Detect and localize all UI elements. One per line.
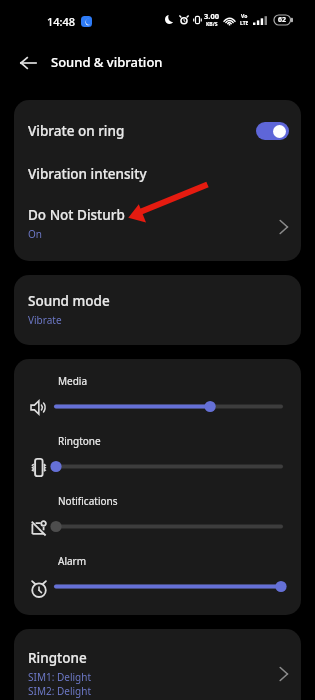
staticText: 3.00 xyxy=(204,11,219,21)
staticText: Vibration intensity xyxy=(28,165,147,183)
button[interactable]: Media xyxy=(14,371,301,427)
staticText: On xyxy=(28,227,42,241)
staticText: 62 xyxy=(278,15,287,25)
button[interactable]: Notifications xyxy=(14,491,301,547)
staticText: Notifications xyxy=(58,494,118,508)
staticText: KB/S xyxy=(206,21,218,28)
staticText: Sound mode xyxy=(28,292,110,310)
button[interactable]: Alarm xyxy=(14,551,301,607)
staticText: SIM1: Delight xyxy=(28,670,91,684)
staticText: 14:48 xyxy=(47,14,76,29)
staticText: Media xyxy=(58,374,88,388)
staticText: Ringtone xyxy=(58,434,101,448)
staticText: Vibrate xyxy=(28,313,62,327)
staticText: Do Not Disturb xyxy=(28,206,125,224)
button[interactable]: Vibrate on ring xyxy=(14,112,301,150)
button[interactable]: Ringtone xyxy=(14,629,301,700)
staticText: Ringtone xyxy=(28,649,87,667)
staticText: SIM2: Delight xyxy=(28,684,91,698)
button[interactable]: Back xyxy=(10,45,46,81)
staticText: LTE xyxy=(240,20,249,27)
button[interactable]: Sound mode xyxy=(14,275,301,345)
staticText: Vo xyxy=(241,13,248,20)
staticText: Vibrate on ring xyxy=(28,122,125,140)
button[interactable]: Ringtone xyxy=(14,431,301,487)
button[interactable]: Vibration intensity xyxy=(14,155,301,193)
staticText: Sound & vibration xyxy=(51,53,163,71)
staticText: Alarm xyxy=(58,554,87,568)
button[interactable]: Vibrate on ring xyxy=(256,122,289,140)
button[interactable]: Do Not Disturb xyxy=(14,198,301,248)
